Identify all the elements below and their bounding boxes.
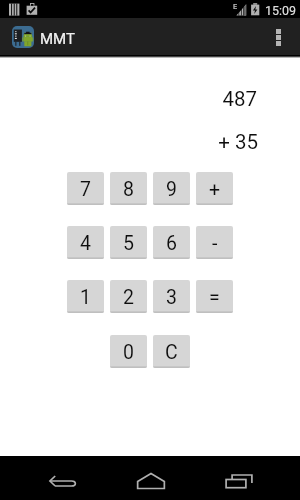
button[interactable]: 5 [110,226,147,259]
staticText: 7 [80,178,91,201]
button[interactable]: 7 [67,172,104,205]
staticText: 8 [123,178,134,201]
staticText: 6 [166,232,177,255]
button[interactable]: = [196,280,233,313]
button[interactable]: - [196,226,233,259]
staticText: 2 [123,286,134,309]
staticText: - [212,232,218,255]
staticText: 0 [123,341,134,364]
button[interactable]: 1 [67,280,104,313]
button[interactable]: 0 [110,335,147,368]
staticText: + 35 [0,130,258,154]
button[interactable]: 6 [153,226,190,259]
staticText: 5 [123,232,134,255]
button[interactable]: 9 [153,172,190,205]
button[interactable]: More options [261,18,295,55]
staticText: 9 [166,178,177,201]
button[interactable]: 8 [110,172,147,205]
staticText: 1 [80,286,91,309]
button[interactable]: 3 [153,280,190,313]
staticText: E [233,2,238,11]
button[interactable]: Back [30,456,94,500]
staticText: 4 [80,232,91,255]
button[interactable]: 4 [67,226,104,259]
staticText: = [209,286,220,309]
staticText: 487 [0,87,257,111]
staticText: 15:09 [265,3,297,18]
button[interactable]: 2 [110,280,147,313]
staticText: MMT [40,30,75,48]
button[interactable]: + [196,172,233,205]
button[interactable]: C [153,335,190,368]
button[interactable]: Home [119,456,183,500]
button[interactable]: Recents [207,456,271,500]
staticText: 3 [166,286,177,309]
staticText: C [165,341,178,364]
staticText: + [209,178,221,201]
